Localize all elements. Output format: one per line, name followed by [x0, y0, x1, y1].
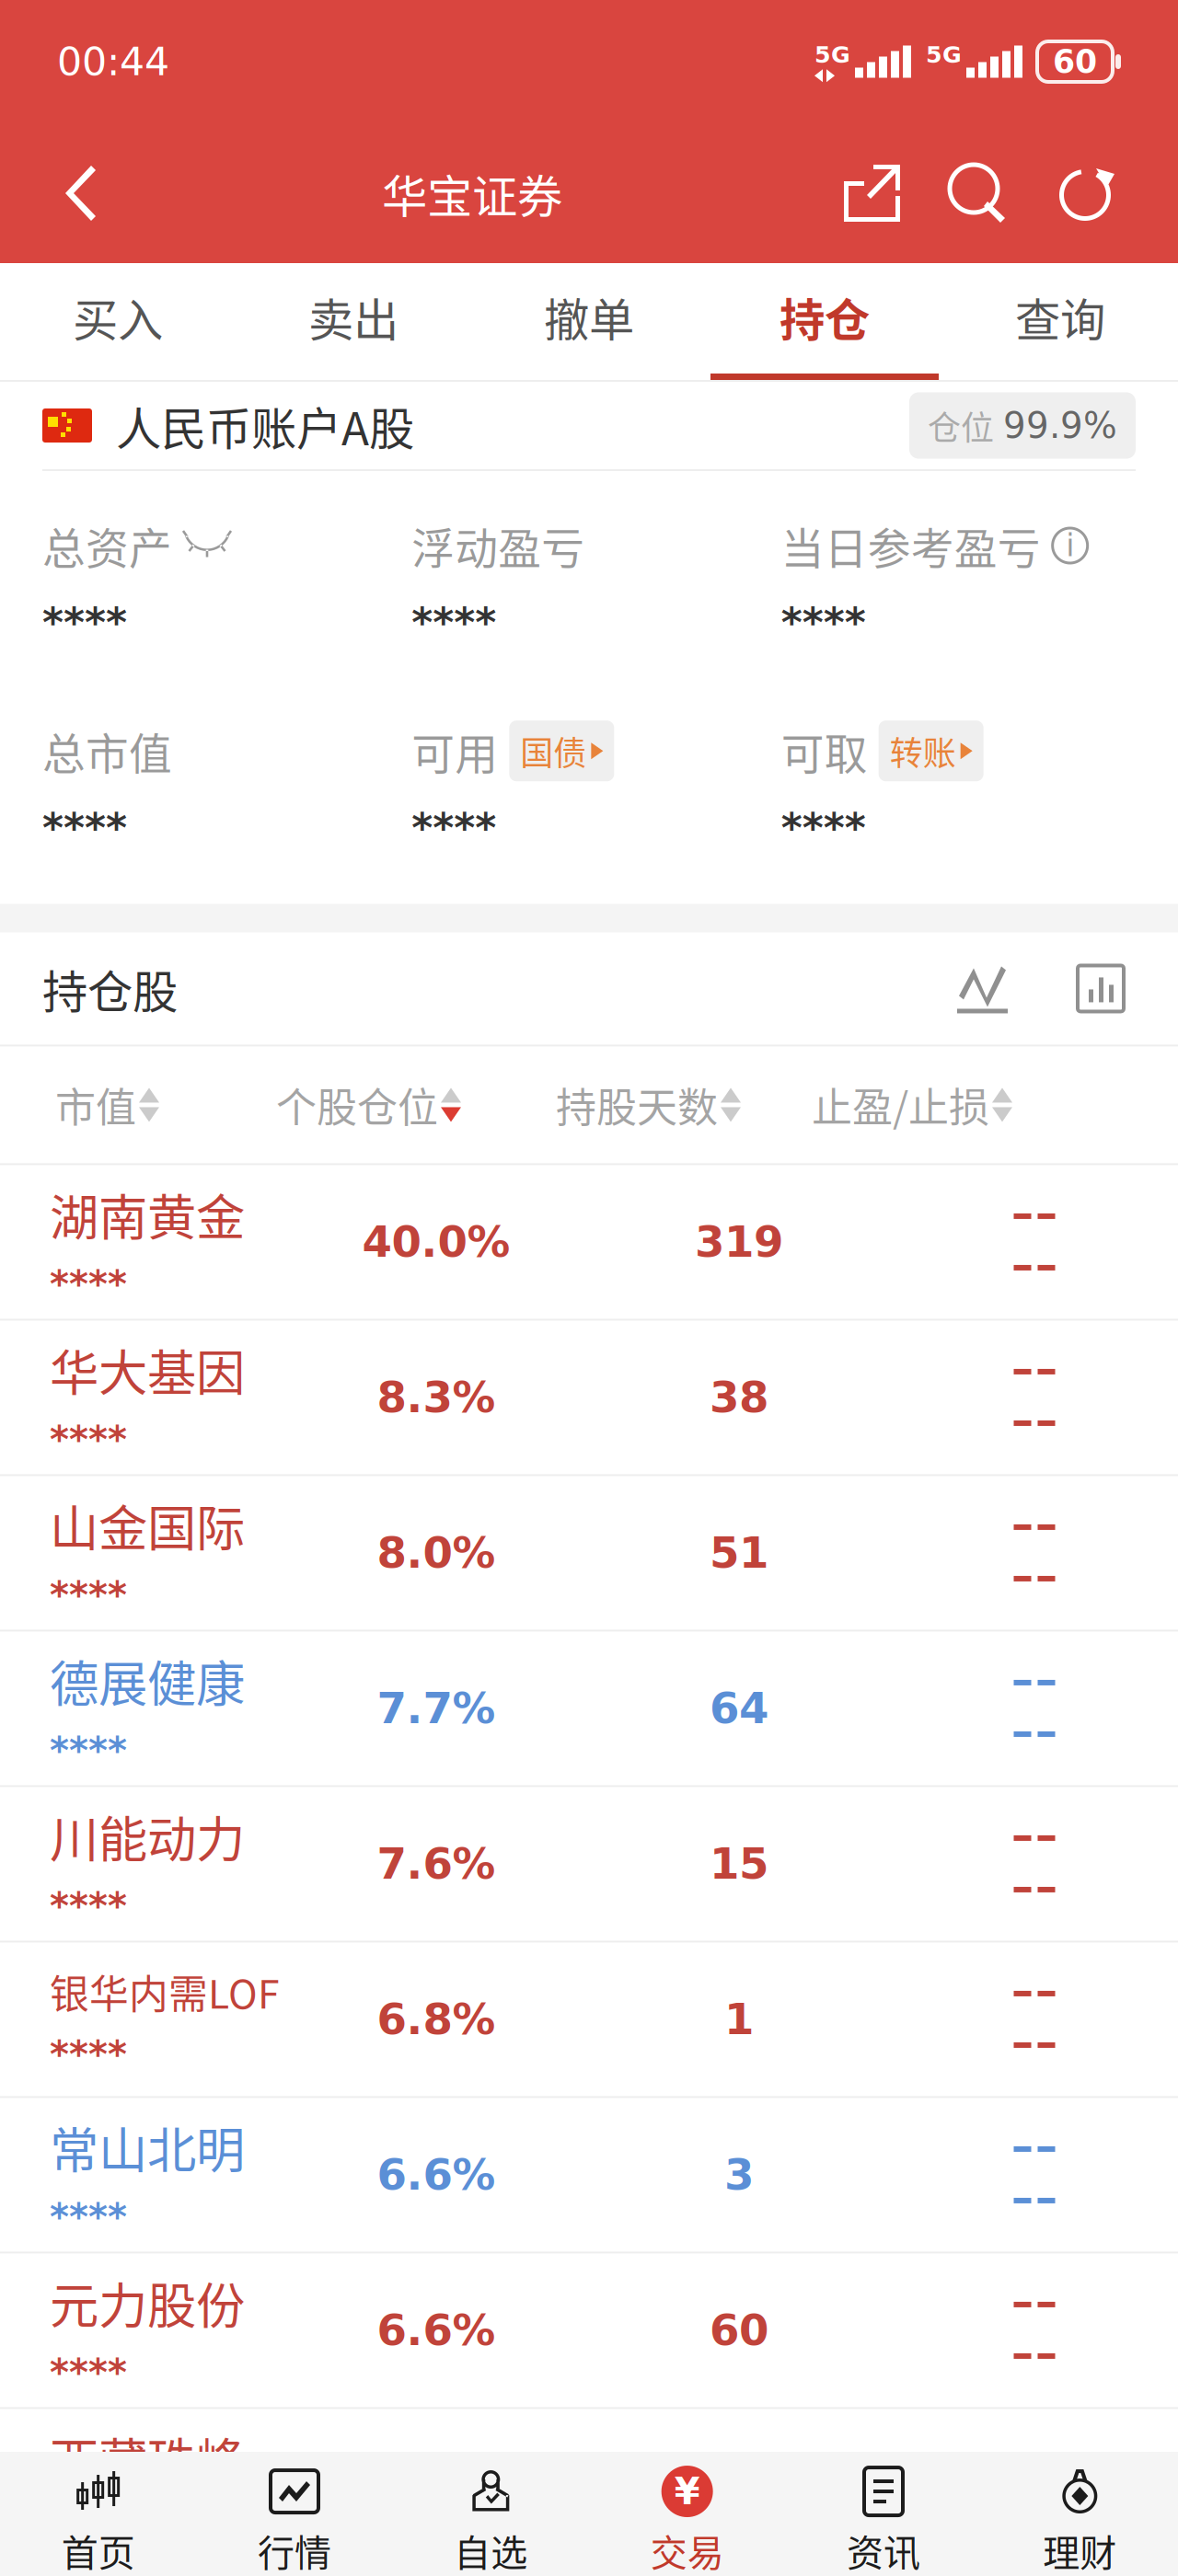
button[interactable]: Search	[925, 123, 1032, 263]
staticText: 西藏珠峰	[50, 2422, 245, 2493]
staticText: 行情	[258, 2524, 331, 2576]
staticText: 理财	[1043, 2524, 1117, 2576]
staticText: 止盈/止损	[812, 1076, 989, 1134]
button[interactable]: 华大基因	[0, 1321, 1178, 1476]
staticText: 仓位	[928, 401, 994, 449]
staticText: 60	[1053, 43, 1097, 80]
button[interactable]: 理财	[982, 2452, 1178, 2576]
button[interactable]: 持仓	[707, 263, 942, 380]
button[interactable]: 首页	[0, 2452, 196, 2576]
staticText: 8.0%	[377, 1528, 496, 1578]
staticText: 00:44	[57, 39, 169, 85]
button[interactable]: 银华内需LOF	[0, 1942, 1178, 2098]
staticText: 市值	[55, 1076, 136, 1134]
button[interactable]: 个股仓位	[276, 1076, 461, 1134]
button[interactable]: Line chart	[941, 932, 1025, 1045]
button[interactable]: Share	[819, 123, 925, 263]
staticText: 买入	[73, 284, 163, 350]
button[interactable]: 国债	[509, 721, 614, 781]
staticText: 资讯	[847, 2524, 920, 2576]
staticText: 川能动力	[50, 1800, 245, 1871]
button[interactable]: Back	[61, 123, 125, 263]
button[interactable]: 资讯	[785, 2452, 982, 2576]
staticText: 德展健康	[50, 1645, 245, 1716]
staticText: 持仓	[780, 284, 870, 350]
staticText: 40.0%	[362, 1217, 510, 1267]
button[interactable]: Refresh	[1032, 123, 1114, 263]
staticText: 华大基因	[50, 1334, 245, 1405]
staticText: 3	[724, 2150, 754, 2200]
staticText: 银华内需LOF	[50, 1963, 280, 2020]
staticText: 6.8%	[377, 1994, 496, 2044]
staticText: ¥	[674, 2470, 700, 2513]
button[interactable]: 市值	[55, 1076, 159, 1134]
staticText: ****	[42, 804, 127, 851]
button[interactable]: 川能动力	[0, 1787, 1178, 1942]
staticText: 个股仓位	[276, 1076, 438, 1134]
staticText: 8.3%	[377, 1372, 496, 1422]
staticText: 99.9%	[1003, 405, 1117, 446]
staticText: ****	[50, 1884, 127, 1927]
staticText: 自选	[454, 2524, 528, 2576]
staticText: 5G	[814, 41, 850, 68]
button[interactable]: 常山北明	[0, 2098, 1178, 2253]
staticText: ****	[50, 2195, 127, 2238]
staticText: 人民币账户A股	[116, 393, 414, 458]
staticText: 38	[710, 1372, 768, 1422]
staticText: 查询	[1015, 284, 1105, 350]
staticText: 撤单	[544, 284, 634, 350]
staticText: 64	[710, 1683, 768, 1733]
staticText: ****	[412, 599, 496, 646]
staticText: 湖南黄金	[50, 1179, 245, 1250]
staticText: 6.0%	[377, 2461, 496, 2511]
staticText: 浮动盈亏	[412, 514, 585, 577]
button[interactable]: 买入	[0, 263, 236, 380]
button[interactable]: 元力股份	[0, 2253, 1178, 2409]
staticText: ****	[781, 599, 866, 646]
staticText: 转账	[890, 727, 956, 775]
staticText: ****	[50, 1729, 127, 1772]
button[interactable]: 转账	[879, 721, 984, 781]
staticText: 6.6%	[377, 2305, 496, 2355]
staticText: 7.7%	[377, 1683, 496, 1733]
button[interactable]: 仓位	[909, 392, 1136, 459]
button[interactable]: 查询	[942, 263, 1178, 380]
staticText: 持仓股	[42, 956, 178, 1021]
staticText: ****	[50, 1573, 127, 1616]
staticText: 总市值	[42, 720, 172, 782]
button[interactable]: 湖南黄金	[0, 1165, 1178, 1321]
button[interactable]: 卖出	[236, 263, 471, 380]
staticText: 常山北明	[50, 2111, 245, 2182]
button[interactable]: 止盈/止损	[812, 1076, 1012, 1134]
button[interactable]: 撤单	[471, 263, 707, 380]
staticText: 6.6%	[377, 2150, 496, 2200]
button[interactable]: 持股天数	[556, 1076, 741, 1134]
staticText: 1	[724, 1994, 754, 2044]
staticText: 7.6%	[377, 1839, 496, 1889]
button[interactable]: ¥	[589, 2452, 785, 2576]
staticText: ****	[50, 2033, 127, 2076]
button[interactable]: Bar chart	[1066, 932, 1136, 1045]
staticText: 总资产	[42, 514, 172, 577]
staticText: 交易	[650, 2524, 724, 2576]
staticText: ****	[412, 804, 496, 851]
staticText: 15	[710, 1839, 768, 1889]
staticText: 60	[710, 2305, 768, 2355]
staticText: 华宝证券	[382, 160, 562, 226]
button[interactable]: 自选	[393, 2452, 589, 2576]
staticText: 卖出	[308, 284, 398, 350]
staticText: 首页	[61, 2524, 135, 2576]
button[interactable]: 行情	[196, 2452, 393, 2576]
staticText: i	[1066, 528, 1074, 563]
button[interactable]: 德展健康	[0, 1632, 1178, 1787]
staticText: ****	[42, 599, 127, 646]
button[interactable]: 山金国际	[0, 1476, 1178, 1632]
staticText: 5G	[926, 41, 962, 68]
staticText: ****	[50, 2506, 127, 2549]
staticText: 持股天数	[556, 1076, 718, 1134]
button[interactable]: 西藏珠峰	[0, 2409, 1178, 2564]
staticText: ****	[50, 2351, 127, 2394]
staticText: ****	[50, 1263, 127, 1305]
staticText: 元力股份	[50, 2267, 245, 2338]
staticText: ****	[50, 1418, 127, 1461]
